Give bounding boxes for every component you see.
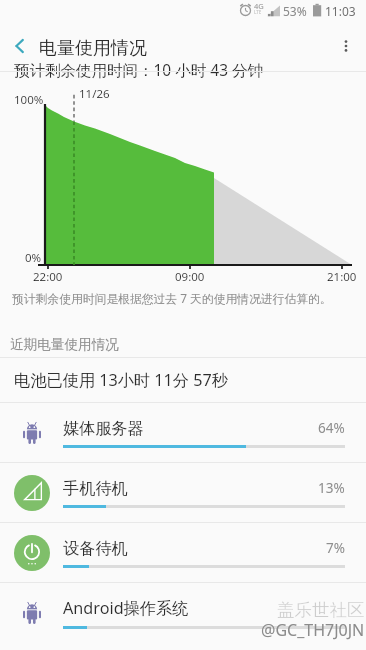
staticText: 64% xyxy=(318,419,345,437)
staticText: LTE xyxy=(254,9,262,15)
staticText: 53% xyxy=(283,3,307,19)
staticText: 11/26 xyxy=(79,86,110,102)
staticText: 11:03 xyxy=(325,3,356,19)
staticText: Android操作系统 xyxy=(63,597,345,619)
staticText: 媒体服务器 xyxy=(63,418,318,438)
button[interactable]: Back xyxy=(0,21,40,71)
staticText: 盖乐世社区 xyxy=(277,599,365,621)
staticText: 0% xyxy=(25,250,42,266)
staticText: 电池已使用 13小时 11分 57秒 xyxy=(14,369,228,391)
button[interactable]: 媒体服务器 xyxy=(0,403,366,462)
staticText: 4G xyxy=(254,1,264,11)
staticText: 预计剩余使用时间是根据您过去 7 天的使用情况进行估算的。 xyxy=(12,290,332,306)
staticText: 22:00 xyxy=(33,269,63,285)
staticText: 手机待机 xyxy=(63,478,318,498)
staticText: 预计剩余使用时间：10 小时 43 分钟 xyxy=(14,59,264,80)
staticText: 09:00 xyxy=(175,269,205,285)
button[interactable]: More options xyxy=(326,21,366,71)
staticText: 电量使用情况 xyxy=(39,37,147,60)
staticText: @GC_TH7J0JN xyxy=(261,619,365,641)
button[interactable]: Android操作系统 xyxy=(0,583,366,642)
staticText: 13% xyxy=(318,479,345,497)
staticText: 7% xyxy=(326,539,345,557)
staticText: 100% xyxy=(14,92,44,108)
staticText: 设备待机 xyxy=(63,538,326,558)
staticText: 21:00 xyxy=(327,269,357,285)
staticText: 近期电量使用情况 xyxy=(10,336,119,353)
button[interactable]: 设备待机 xyxy=(0,523,366,582)
button[interactable]: 手机待机 xyxy=(0,463,366,522)
